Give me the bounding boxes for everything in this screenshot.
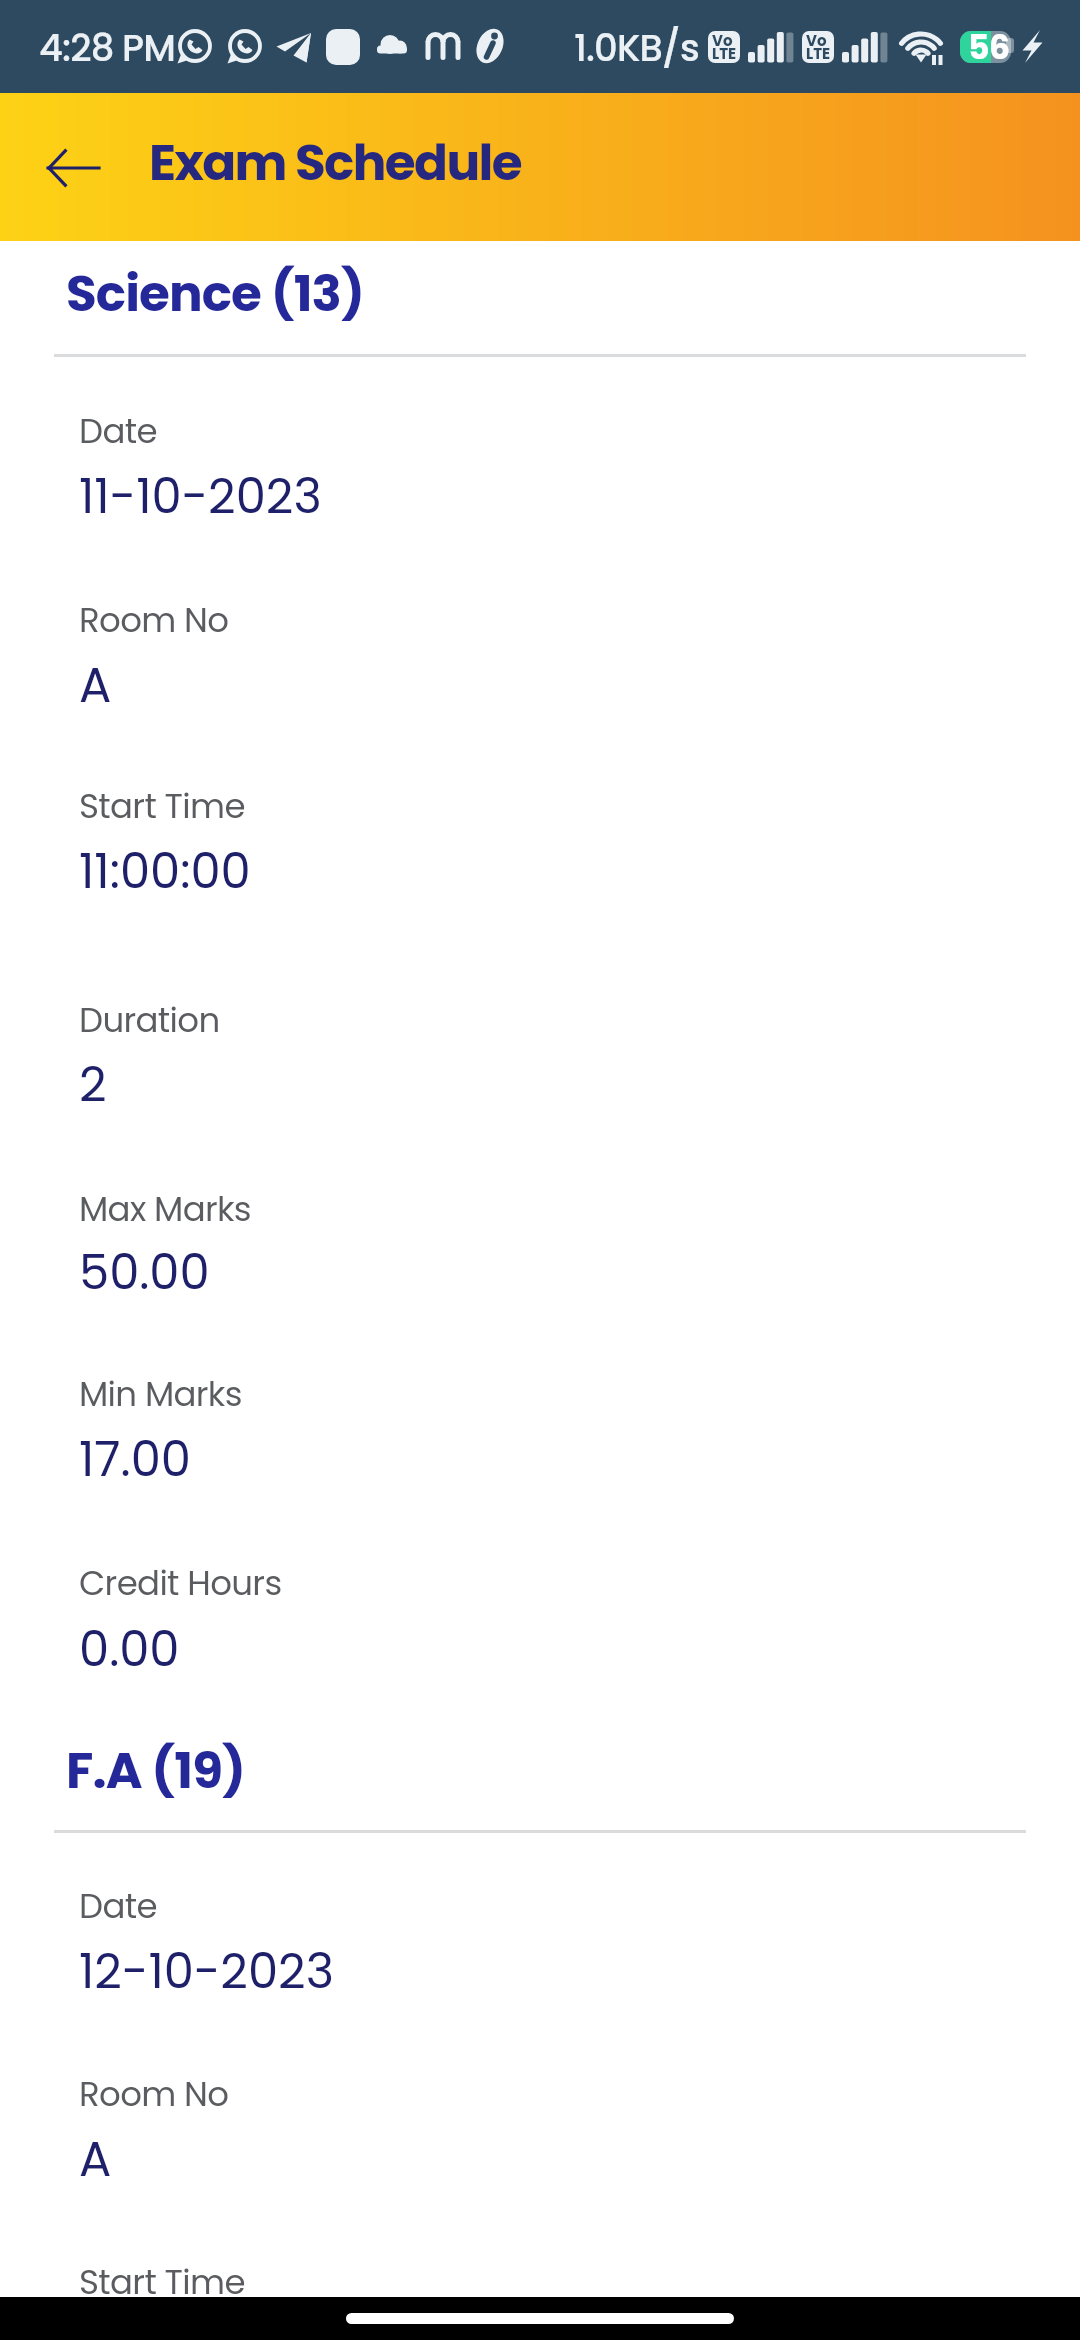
staticText: Credit Hours xyxy=(79,1559,282,1607)
button[interactable]: Min Marks xyxy=(54,1358,1026,1474)
staticText: Date xyxy=(79,407,157,455)
button[interactable]: Room No xyxy=(54,584,1026,700)
staticText: 2 xyxy=(79,1051,107,1118)
staticText: A xyxy=(79,2126,112,2193)
button[interactable]: Room No xyxy=(54,2058,1026,2174)
button[interactable]: Science (13) xyxy=(54,245,1026,357)
staticText: Science (13) xyxy=(66,259,364,329)
button[interactable]: Back xyxy=(28,117,128,217)
staticText: Vo LTE xyxy=(806,30,831,65)
staticText: 4:28 PM xyxy=(39,22,175,74)
staticText: Duration xyxy=(79,996,220,1044)
staticText: Exam Schedule xyxy=(149,128,521,198)
staticText: 11-10-2023 xyxy=(79,463,322,530)
staticText: 17.00 xyxy=(79,1426,191,1493)
staticText: Start Time xyxy=(79,782,245,830)
button[interactable]: Start Time xyxy=(54,2246,1026,2298)
button[interactable]: Date xyxy=(54,1870,1026,1986)
staticText: Max Marks xyxy=(79,1185,251,1233)
button[interactable]: Credit Hours xyxy=(54,1547,1026,1664)
staticText: 0.00 xyxy=(79,1616,180,1683)
button[interactable]: Date xyxy=(54,395,1026,511)
staticText: Room No xyxy=(79,2070,229,2118)
staticText: 56 xyxy=(968,24,1010,70)
staticText: F.A (19) xyxy=(66,1736,245,1806)
staticText: 50.00 xyxy=(79,1239,210,1306)
button[interactable]: Start Time xyxy=(54,770,1026,886)
staticText: 1.0KB/s xyxy=(574,22,699,74)
button[interactable]: F.A (19) xyxy=(54,1722,1026,1833)
staticText: A xyxy=(79,652,112,719)
staticText: Vo LTE xyxy=(712,30,737,65)
button[interactable]: Duration xyxy=(54,984,1026,1099)
staticText: 11:00:00 xyxy=(79,838,251,905)
staticText: Start Time xyxy=(79,2258,245,2306)
staticText: Room No xyxy=(79,596,229,644)
staticText: 12-10-2023 xyxy=(79,1938,334,2005)
staticText: Min Marks xyxy=(79,1370,242,1418)
button[interactable]: Max Marks xyxy=(54,1173,1026,1287)
staticText: Date xyxy=(79,1882,157,1930)
